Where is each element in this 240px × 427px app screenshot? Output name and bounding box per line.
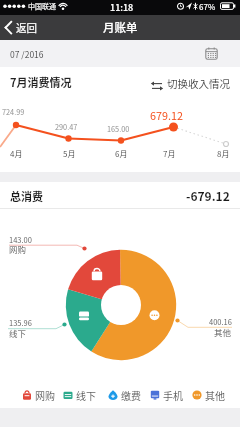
staticText: 400.16: [209, 316, 232, 327]
button[interactable]: 其他: [192, 385, 225, 405]
staticText: 总消费: [10, 188, 43, 204]
staticText: 5月: [63, 148, 76, 160]
button[interactable]: 切换收入情况: [150, 78, 230, 93]
staticText: 网购: [35, 388, 55, 402]
staticText: 其他: [205, 388, 225, 402]
staticText: 手机: [163, 388, 183, 402]
staticText: 135.96: [9, 317, 32, 328]
staticText: 67%: [199, 1, 216, 13]
staticText: 290.47: [55, 122, 78, 133]
staticText: 4月: [10, 148, 23, 160]
staticText: 其他: [214, 326, 232, 338]
button[interactable]: 线下: [63, 385, 96, 405]
staticText: 线下: [76, 388, 96, 402]
staticText: 7月: [163, 148, 176, 160]
staticText: 679.12: [150, 107, 183, 123]
staticText: 月账单: [103, 19, 138, 36]
staticText: 11:18: [110, 1, 134, 14]
staticText: 中国联通: [28, 1, 56, 11]
staticText: -679.12: [186, 187, 230, 204]
button[interactable]: 手机: [150, 385, 183, 405]
staticText: 缴费: [121, 388, 141, 402]
staticText: 6月: [115, 148, 128, 160]
staticText: 返回: [16, 20, 37, 35]
button[interactable]: 返回: [3, 15, 37, 40]
staticText: 7月消费情况: [10, 74, 72, 90]
button[interactable]: 网购: [22, 385, 55, 405]
staticText: 线下: [9, 327, 27, 339]
staticText: 143.00: [9, 234, 32, 245]
staticText: 网购: [9, 243, 27, 255]
staticText: 165.00: [107, 124, 130, 135]
staticText: 8月: [217, 148, 230, 160]
button[interactable]: 缴费: [108, 385, 141, 405]
staticText: 07 /2016: [10, 48, 44, 60]
button[interactable]: 07 /2016: [0, 40, 240, 67]
staticText: 724.99: [2, 107, 25, 118]
staticText: 切换收入情况: [167, 76, 230, 91]
